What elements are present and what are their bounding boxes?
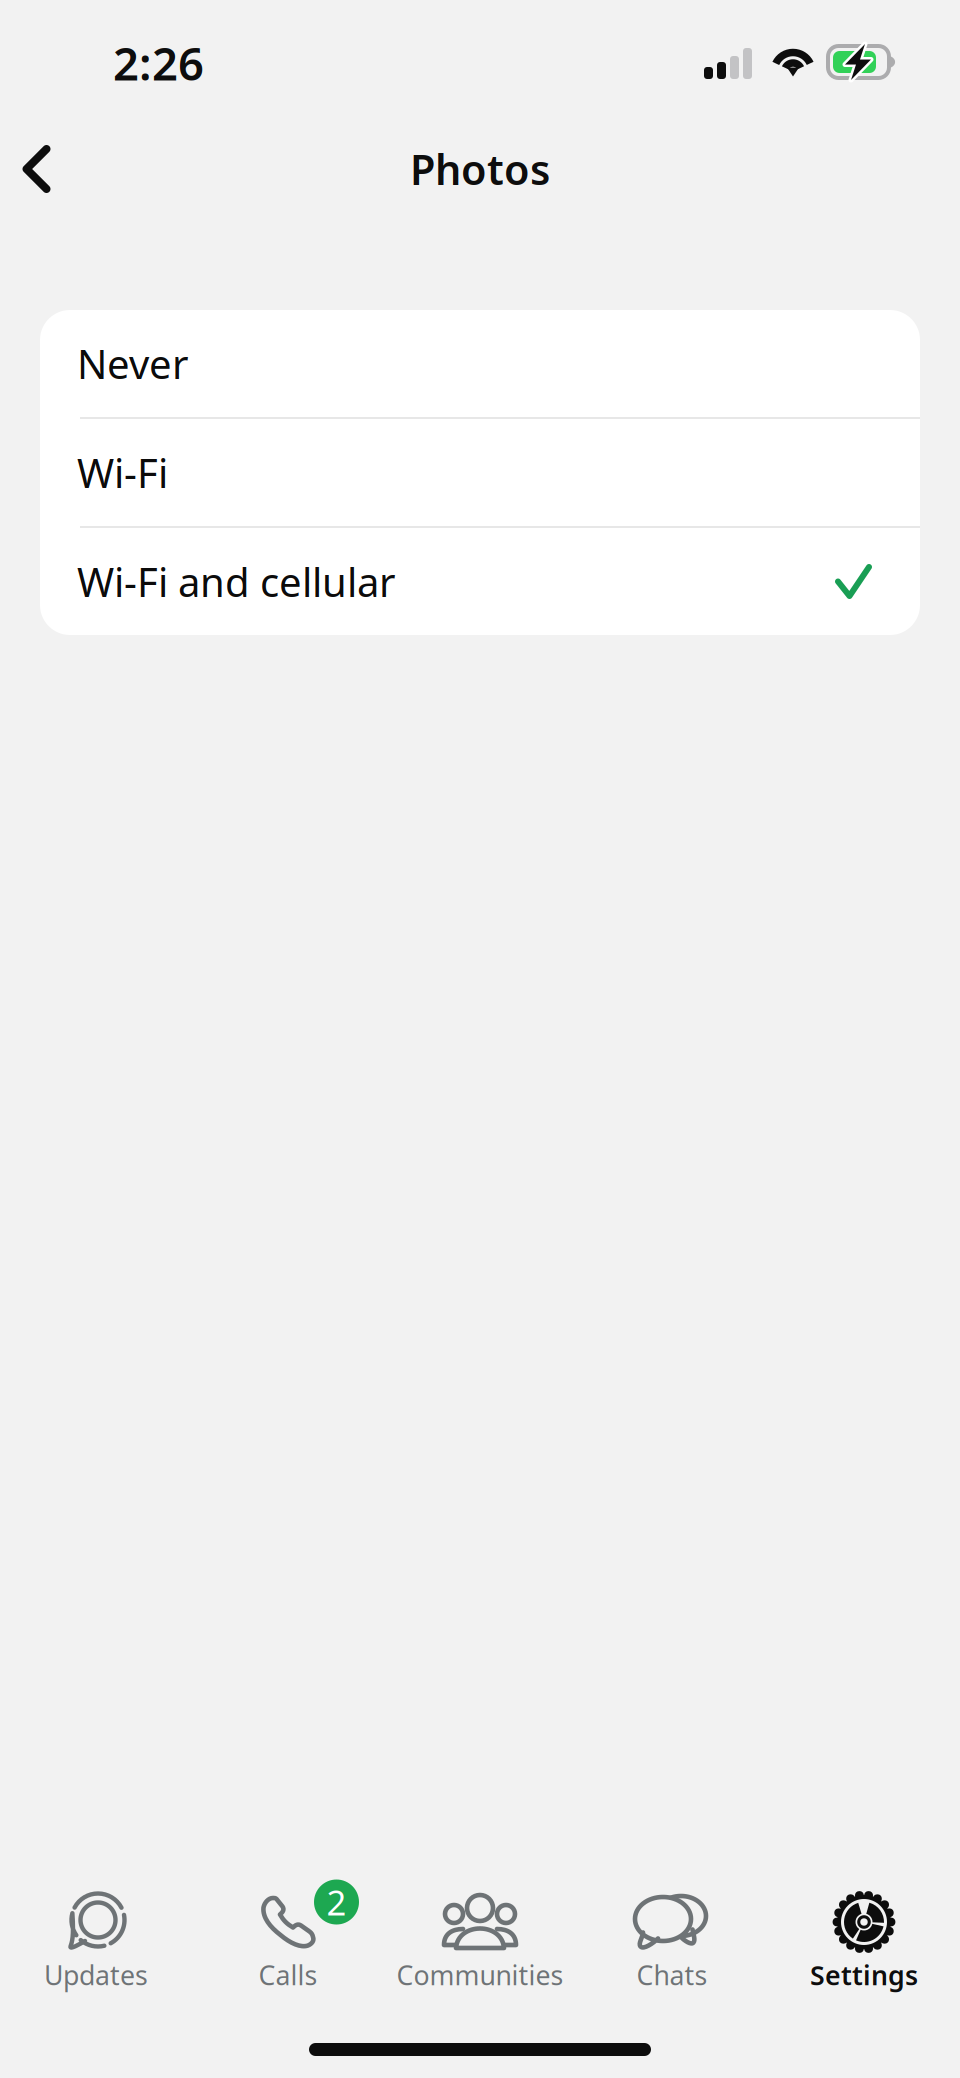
button[interactable]: Never [40, 310, 920, 417]
button[interactable]: Updates [0, 1891, 192, 1990]
button[interactable]: Communities [384, 1891, 576, 1990]
staticText: Calls [258, 1957, 317, 1993]
button[interactable]: Wi-Fi [40, 419, 920, 526]
button[interactable]: Wi-Fi and cellular [40, 528, 920, 635]
staticText: Wi-Fi [77, 446, 168, 499]
staticText: Updates [44, 1957, 148, 1993]
button[interactable]: Settings [768, 1891, 960, 1990]
staticText: Communities [396, 1957, 563, 1993]
button[interactable]: Back [0, 124, 73, 214]
staticText: Chats [636, 1957, 707, 1993]
button[interactable]: Calls [192, 1891, 384, 1990]
staticText: Never [77, 337, 189, 390]
staticText: Photos [410, 142, 550, 196]
button[interactable]: Chats [576, 1891, 768, 1990]
staticText: 2 [326, 1879, 346, 1925]
staticText: Settings [810, 1957, 918, 1993]
staticText: Wi-Fi and cellular [77, 555, 396, 608]
staticText: 2:26 [113, 33, 204, 93]
